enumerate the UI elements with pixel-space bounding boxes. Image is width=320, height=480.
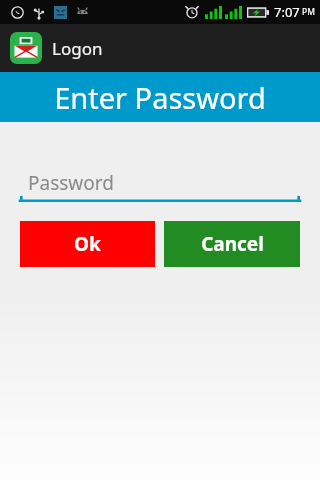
button[interactable]: Cancel — [164, 221, 300, 267]
button[interactable]: Password — [20, 170, 300, 202]
staticText: 7:07 — [274, 3, 300, 21]
staticText: Ok — [74, 231, 101, 257]
staticText: Enter Password — [54, 78, 266, 117]
staticText: Password — [28, 170, 114, 196]
staticText: Logon — [52, 37, 103, 60]
staticText: PM — [302, 6, 315, 18]
staticText: Cancel — [201, 231, 264, 257]
button[interactable]: Ok — [20, 221, 155, 267]
